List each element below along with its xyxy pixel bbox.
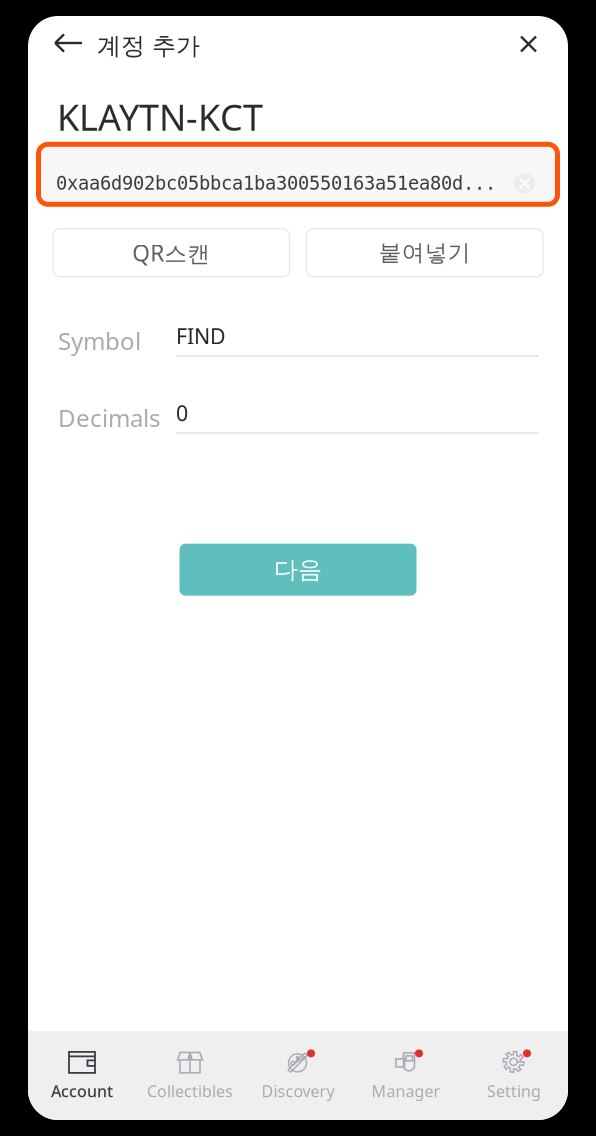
- button[interactable]: Manager: [352, 1043, 460, 1108]
- button[interactable]: Setting: [460, 1043, 568, 1108]
- staticText: 0: [176, 399, 188, 427]
- button[interactable]: QR스캔: [53, 229, 289, 277]
- button[interactable]: 다음: [179, 544, 416, 596]
- staticText: Setting: [487, 1080, 541, 1102]
- button[interactable]: 붙여넣기: [306, 229, 543, 277]
- staticText: Collectibles: [147, 1080, 233, 1102]
- staticText: KLAYTN-KCT: [57, 93, 263, 141]
- staticText: Discovery: [261, 1080, 334, 1102]
- staticText: Manager: [371, 1080, 440, 1102]
- button[interactable]: Collectibles: [136, 1043, 244, 1108]
- staticText: Symbol: [58, 325, 141, 357]
- button[interactable]: Account: [28, 1043, 136, 1108]
- staticText: Account: [51, 1080, 113, 1102]
- staticText: 다음: [274, 555, 322, 584]
- staticText: Decimals: [58, 402, 160, 434]
- button[interactable]: Back: [54, 27, 97, 64]
- staticText: 계정 추가: [97, 31, 200, 61]
- staticText: 붙여넣기: [379, 239, 471, 267]
- button[interactable]: Close: [511, 28, 546, 63]
- staticText: QR스캔: [132, 238, 210, 268]
- staticText: 0xaa6d902bc05bbca1ba300550163a51ea80d...: [56, 173, 496, 194]
- staticText: FIND: [176, 322, 226, 350]
- button[interactable]: Discovery: [244, 1043, 352, 1108]
